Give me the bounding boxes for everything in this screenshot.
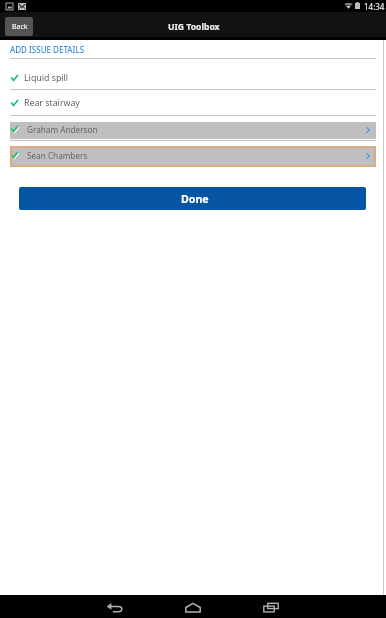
button[interactable]: Rear stairway: [0, 89, 386, 115]
staticText: Sean Chambers: [27, 150, 88, 161]
staticText: Rear stairway: [24, 97, 80, 109]
button[interactable]: Home: [181, 595, 205, 618]
staticText: ADD ISSUE DETAILS: [10, 44, 85, 55]
staticText: Back: [12, 22, 28, 32]
staticText: Liquid spill: [24, 72, 69, 84]
button[interactable]: Liquid spill: [0, 58, 386, 89]
button[interactable]: Recents: [259, 595, 283, 618]
staticText: 14:34: [364, 1, 385, 12]
staticText: Done: [181, 192, 209, 206]
staticText: UIG Toolbox: [168, 21, 220, 33]
button[interactable]: Back: [5, 17, 33, 36]
button[interactable]: Graham Anderson: [10, 122, 376, 139]
button[interactable]: Sean Chambers: [10, 146, 376, 167]
button[interactable]: Back: [103, 595, 127, 618]
button[interactable]: Done: [19, 187, 366, 210]
staticText: Graham Anderson: [27, 124, 98, 135]
